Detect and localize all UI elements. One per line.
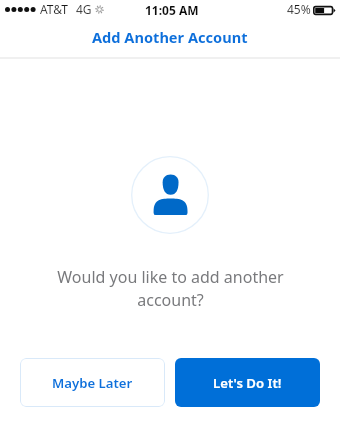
button[interactable]: Add Another Account: [70, 18, 270, 55]
staticText: 4G: [76, 1, 92, 17]
button[interactable]: Let's Do It!: [175, 358, 320, 407]
staticText: AT&T: [40, 1, 68, 17]
staticText: Let's Do It!: [213, 374, 282, 392]
staticText: Add Another Account: [92, 27, 248, 47]
staticText: 45%: [287, 1, 311, 17]
staticText: 11:05 AM: [145, 2, 199, 18]
other: Account avatar: [131, 156, 209, 234]
staticText: Maybe Later: [52, 374, 133, 392]
button[interactable]: Maybe Later: [20, 358, 165, 407]
staticText: Would you like to add another account?: [57, 266, 284, 311]
